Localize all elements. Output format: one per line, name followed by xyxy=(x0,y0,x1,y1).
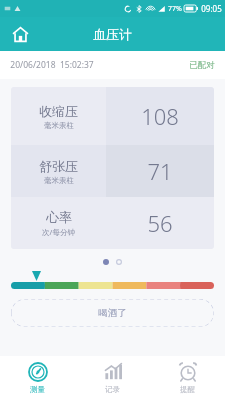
staticText: 毫米汞柱 xyxy=(44,176,74,185)
staticText: 心率 xyxy=(46,209,72,225)
staticText: 血压计 xyxy=(93,26,132,42)
button[interactable]: 心率 xyxy=(11,197,214,249)
staticText: 108 xyxy=(141,101,179,131)
staticText: 56 xyxy=(147,208,173,238)
button[interactable]: 喝酒了 xyxy=(11,299,214,327)
staticText: 收缩压 xyxy=(39,103,78,119)
staticText: 20/06/2018 15:02:37 xyxy=(10,59,94,71)
staticText: 77% xyxy=(168,4,182,14)
staticText: 记录 xyxy=(105,385,120,394)
staticText: 71 xyxy=(147,156,173,186)
staticText: 喝酒了 xyxy=(98,307,127,319)
button[interactable]: 舒张压 xyxy=(11,145,214,197)
staticText: 毫米汞柱 xyxy=(44,121,74,130)
staticText: 已配对 xyxy=(189,60,215,71)
staticText: 09:05 xyxy=(201,3,222,14)
button[interactable]: 收缩压 xyxy=(11,87,214,145)
staticText: 次/每分钟 xyxy=(42,227,75,237)
button[interactable]: Home xyxy=(6,20,34,48)
button[interactable]: 提醒 xyxy=(150,356,225,400)
button[interactable]: 记录 xyxy=(75,356,150,400)
staticText: 测量 xyxy=(30,385,45,394)
staticText: 舒张压 xyxy=(39,158,78,174)
staticText: 提醒 xyxy=(180,385,195,394)
button[interactable]: 测量 xyxy=(0,356,75,400)
